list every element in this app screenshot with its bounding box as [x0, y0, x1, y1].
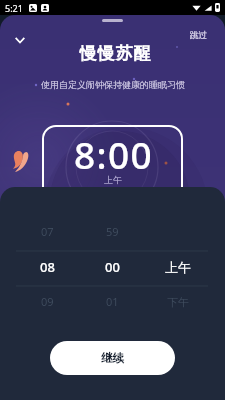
staticText: 01 — [106, 294, 119, 309]
staticText: 跳过 — [190, 30, 207, 41]
staticText: 09 — [41, 294, 54, 309]
staticText: 59 — [106, 224, 119, 239]
staticText: 使用自定义闹钟保持健康的睡眠习惯 — [41, 79, 185, 90]
staticText: 08 — [40, 258, 55, 276]
staticText: 上午 — [165, 259, 191, 275]
button[interactable]: Collapse — [8, 28, 31, 51]
button[interactable]: 跳过 — [186, 26, 211, 45]
staticText: 07 — [41, 224, 54, 239]
staticText: 5:21 — [5, 2, 23, 14]
button[interactable]: 07 — [15, 214, 80, 324]
button[interactable]: 上午 — [145, 214, 210, 324]
staticText: 慢慢苏醒 — [79, 43, 151, 64]
button[interactable]: 59 — [80, 214, 145, 324]
button[interactable]: 继续 — [50, 341, 175, 375]
staticText: 继续 — [101, 351, 124, 365]
staticText: 下午 — [167, 295, 189, 309]
staticText: 上午 — [104, 174, 122, 185]
staticText: 00 — [105, 258, 120, 276]
staticText: 8:00 — [74, 129, 154, 179]
